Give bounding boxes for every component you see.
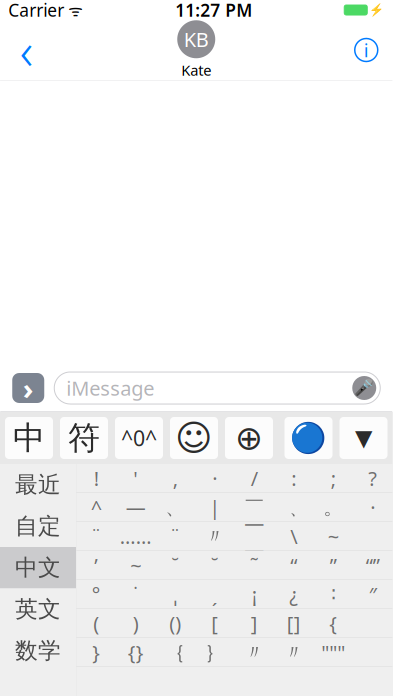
- button[interactable]: ˌ: [155, 580, 195, 608]
- button[interactable]: (: [76, 609, 116, 637]
- staticText: ☺: [175, 418, 213, 458]
- button[interactable]: ]: [234, 609, 274, 637]
- button[interactable]: [: [195, 609, 234, 637]
- button[interactable]: ∶: [313, 580, 353, 608]
- button[interactable]: """: [313, 638, 353, 666]
- button[interactable]: []: [274, 609, 313, 637]
- button[interactable]: ~: [116, 551, 155, 579]
- staticText: ;: [331, 465, 336, 492]
- staticText: [: [211, 610, 218, 637]
- staticText: """: [321, 639, 345, 666]
- button[interactable]: ·: [353, 493, 392, 521]
- button[interactable]: {}: [116, 638, 155, 666]
- button[interactable]: \: [274, 522, 313, 550]
- button[interactable]: ·: [195, 464, 234, 492]
- staticText: ˌ: [174, 581, 177, 608]
- button[interactable]: ”: [313, 551, 353, 579]
- button[interactable]: Dictate: [352, 376, 380, 400]
- button[interactable]: ▼: [339, 417, 387, 459]
- button[interactable]: /: [234, 464, 274, 492]
- button[interactable]: App drawer: [12, 368, 44, 407]
- button[interactable]: 中: [5, 417, 53, 459]
- staticText: ”: [330, 552, 337, 579]
- staticText: ˏ: [212, 581, 218, 608]
- staticText: “: [290, 552, 297, 579]
- button[interactable]: ——: [234, 522, 274, 550]
- button[interactable]: ☺: [170, 417, 218, 459]
- button[interactable]: 最近: [0, 464, 76, 505]
- button[interactable]: ': [116, 464, 155, 492]
- button[interactable]: ˘: [195, 551, 234, 579]
- button[interactable]: {: [313, 609, 353, 637]
- button[interactable]: ¨: [155, 522, 195, 550]
- staticText: ): [133, 610, 139, 637]
- button[interactable]: ~: [313, 522, 353, 550]
- button[interactable]: ｝: [195, 638, 234, 666]
- button[interactable]: 、: [155, 493, 195, 521]
- button[interactable]: ^0^: [115, 417, 163, 459]
- button[interactable]: ˏ: [195, 580, 234, 608]
- staticText: ᯤ: [64, 0, 83, 21]
- button[interactable]: 🔵: [284, 417, 332, 459]
- button[interactable]: Details: [344, 25, 388, 75]
- button[interactable]: °: [76, 580, 116, 608]
- button[interactable]: ″: [353, 580, 392, 608]
- button[interactable]: ʼ: [76, 551, 116, 579]
- staticText: 🎤: [354, 379, 374, 397]
- staticText: {: [329, 610, 337, 637]
- button[interactable]: ￣: [234, 493, 274, 521]
- staticText: iMessage: [66, 375, 154, 401]
- button[interactable]: ﹑: [274, 493, 313, 521]
- button[interactable]: |: [195, 493, 234, 521]
- button[interactable]: ˙: [116, 580, 155, 608]
- button[interactable]: ): [116, 609, 155, 637]
- button[interactable]: 〃: [234, 638, 274, 666]
- button[interactable]: (): [155, 609, 195, 637]
- staticText: 自定: [15, 512, 61, 540]
- button[interactable]: 英文: [0, 588, 76, 630]
- button[interactable]: ⊕: [225, 417, 273, 459]
- button[interactable]: ?: [353, 464, 392, 492]
- button[interactable]: }: [76, 638, 116, 666]
- staticText: ·: [212, 465, 217, 492]
- staticText: ｝: [205, 640, 225, 665]
- button[interactable]: ˘: [155, 551, 195, 579]
- button[interactable]: KB: [177, 20, 215, 80]
- button[interactable]: Back: [4, 25, 48, 75]
- button[interactable]: 中文: [0, 547, 76, 588]
- button[interactable]: “”: [353, 551, 392, 579]
- button[interactable]: ｛: [155, 638, 195, 666]
- button[interactable]: ……: [116, 522, 155, 550]
- staticText: ——: [244, 510, 264, 563]
- staticText: ': [133, 465, 138, 492]
- button[interactable]: ;: [313, 464, 353, 492]
- button[interactable]: ^: [76, 493, 116, 521]
- button[interactable]: ¨: [76, 522, 116, 550]
- button[interactable]: ¿: [274, 580, 313, 608]
- button[interactable]: —: [116, 493, 155, 521]
- button[interactable]: ¡: [234, 580, 274, 608]
- staticText: —: [126, 494, 146, 521]
- button[interactable]: 。: [313, 493, 353, 521]
- button[interactable]: ,: [155, 464, 195, 492]
- staticText: ¡: [252, 581, 257, 608]
- staticText: ^: [91, 494, 102, 521]
- button[interactable]: :: [274, 464, 313, 492]
- button[interactable]: 〃: [195, 522, 234, 550]
- staticText: 、: [165, 495, 185, 520]
- button[interactable]: 数学: [0, 630, 76, 671]
- staticText: °: [92, 581, 101, 608]
- button[interactable]: 符: [60, 417, 108, 459]
- button[interactable]: 自定: [0, 505, 76, 547]
- staticText: 🔵: [290, 421, 327, 455]
- button[interactable]: 〃: [274, 638, 313, 666]
- button[interactable]: ˜: [234, 551, 274, 579]
- staticText: ˜: [250, 552, 259, 579]
- button[interactable]: “: [274, 551, 313, 579]
- button[interactable]: !: [76, 464, 116, 492]
- staticText: 符: [68, 418, 100, 458]
